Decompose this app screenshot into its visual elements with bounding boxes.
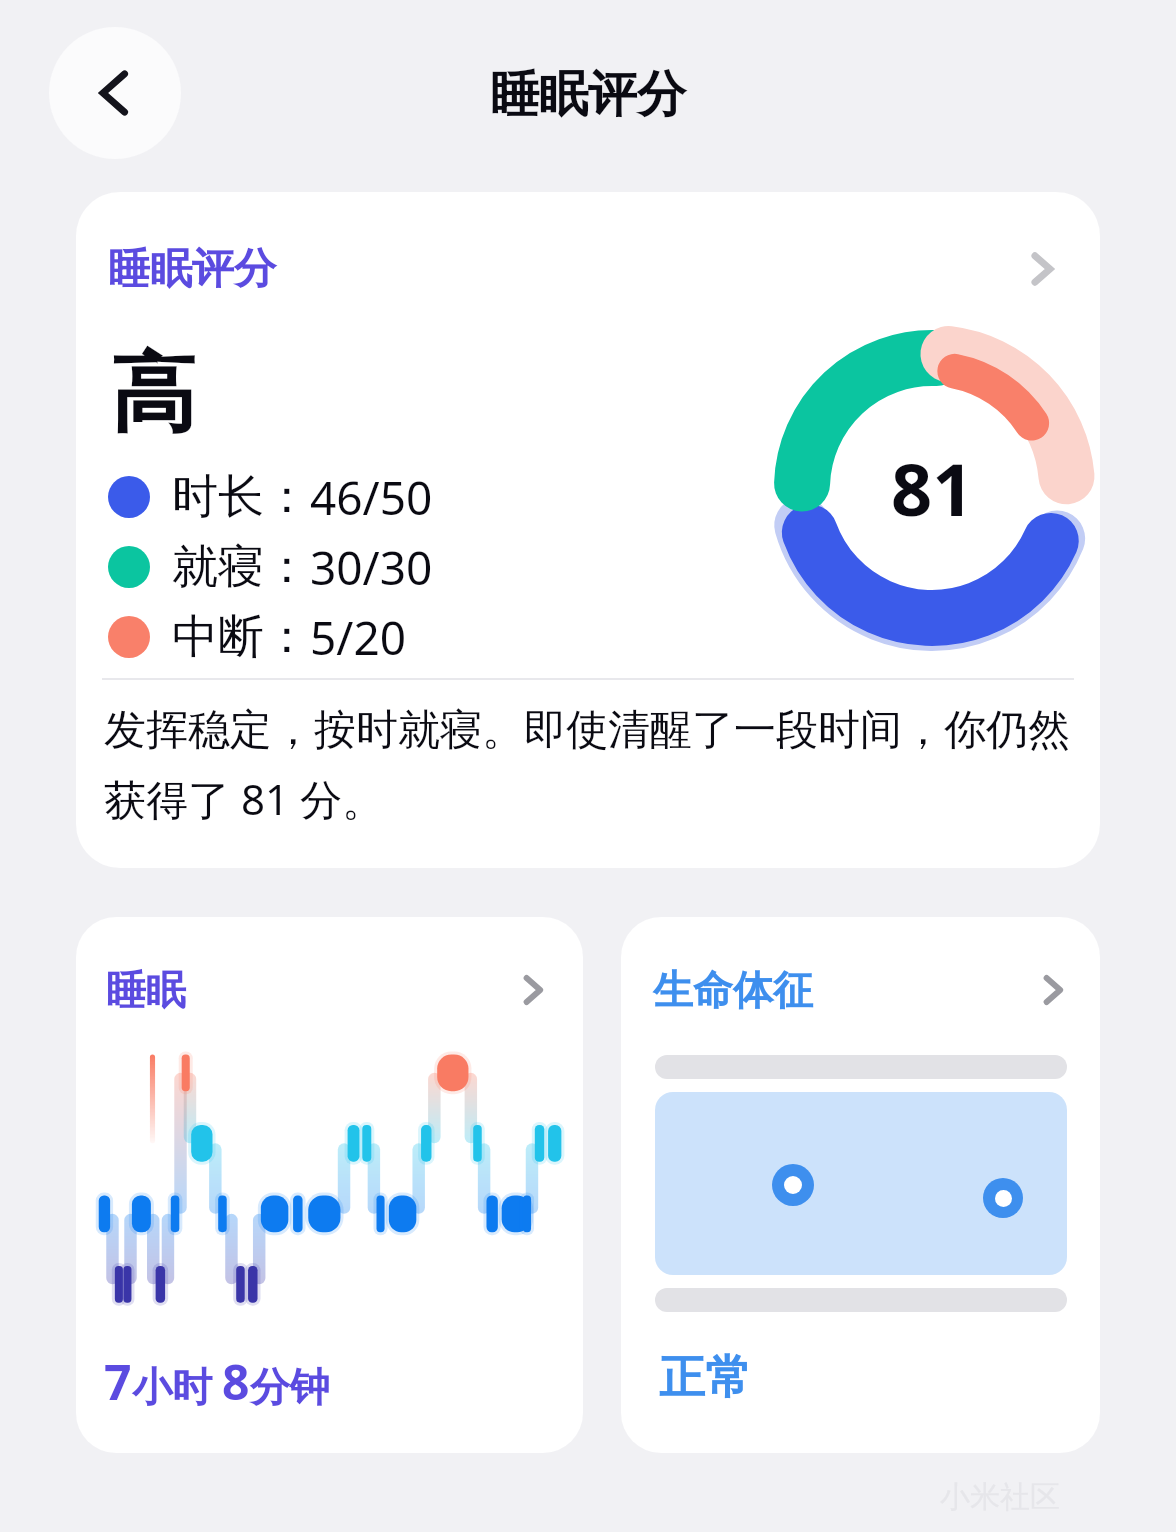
staticText: 7 — [104, 1349, 132, 1414]
staticText: 睡眠 — [106, 965, 186, 1015]
staticText: 30/30 — [310, 536, 433, 598]
staticText: 5/20 — [310, 606, 407, 668]
staticText: 时长： — [172, 468, 310, 526]
button[interactable]: Back — [49, 27, 181, 159]
staticText: 睡眠评分 — [108, 243, 276, 296]
staticText: 高 — [110, 340, 196, 448]
button[interactable]: 睡眠评分 — [76, 192, 1100, 868]
staticText: 8 — [222, 1349, 250, 1414]
staticText: 正常 — [659, 1349, 751, 1407]
staticText: 睡眠评分 — [490, 64, 686, 126]
staticText: 分钟 — [250, 1362, 330, 1412]
staticText: 中断： — [172, 608, 310, 666]
button[interactable]: 睡眠 — [76, 917, 583, 1453]
staticText: 小时 — [132, 1362, 212, 1412]
staticText: 生命体征 — [653, 965, 813, 1015]
staticText: 小米社区 — [940, 1478, 1060, 1516]
button[interactable]: 生命体征 — [621, 917, 1100, 1453]
staticText: 46/50 — [310, 466, 433, 528]
staticText: 就寝： — [172, 538, 310, 596]
staticText: 81 — [891, 439, 974, 537]
staticText: 发挥稳定，按时就寝。即使清醒了一段时间，你仍然获得了 81 分。 — [104, 704, 1072, 828]
